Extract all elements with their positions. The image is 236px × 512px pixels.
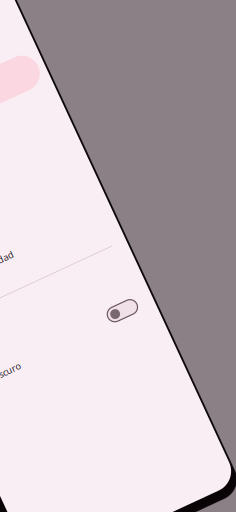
button[interactable]: Privacidad y seguridad — [0, 247, 22, 259]
staticText: Privacidad y seguridad — [0, 247, 22, 259]
